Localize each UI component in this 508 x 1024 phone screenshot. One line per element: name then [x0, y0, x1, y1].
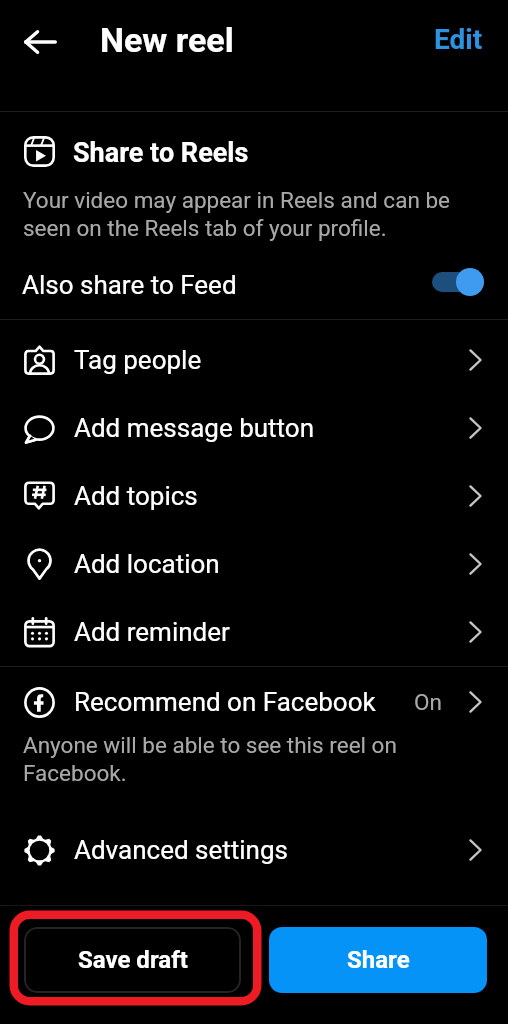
staticText: Add reminder [74, 617, 230, 647]
button[interactable]: Add location [0, 530, 508, 598]
staticText: Add location [74, 549, 220, 579]
button[interactable]: Also share to Feed [0, 258, 508, 312]
staticText: Share [347, 946, 410, 974]
staticText: Your video may appear in Reels and can b… [23, 186, 485, 242]
button[interactable]: Share [269, 927, 487, 993]
staticText: Edit [434, 23, 483, 56]
button[interactable]: Add reminder [0, 598, 508, 666]
staticText: New reel [100, 20, 234, 60]
staticText: Add message button [74, 413, 315, 443]
button[interactable]: Recommend on Facebook [0, 668, 508, 736]
button[interactable]: Edit [430, 19, 487, 60]
button[interactable]: Back [12, 14, 68, 70]
staticText: Tag people [74, 345, 202, 375]
button[interactable]: Tag people [0, 326, 508, 394]
staticText: Recommend on Facebook [74, 687, 376, 717]
button[interactable]: Save draft [24, 927, 241, 993]
staticText: Add topics [74, 481, 198, 511]
staticText: Save draft [78, 946, 188, 974]
button[interactable]: Advanced settings [0, 816, 508, 884]
staticText: Also share to Feed [22, 270, 237, 300]
staticText: Advanced settings [74, 835, 288, 865]
button[interactable]: Add topics [0, 462, 508, 530]
button[interactable]: Add message button [0, 394, 508, 462]
staticText: Share to Reels [73, 137, 249, 169]
staticText: On [414, 689, 442, 715]
staticText: Anyone will be able to see this reel on … [23, 731, 443, 787]
